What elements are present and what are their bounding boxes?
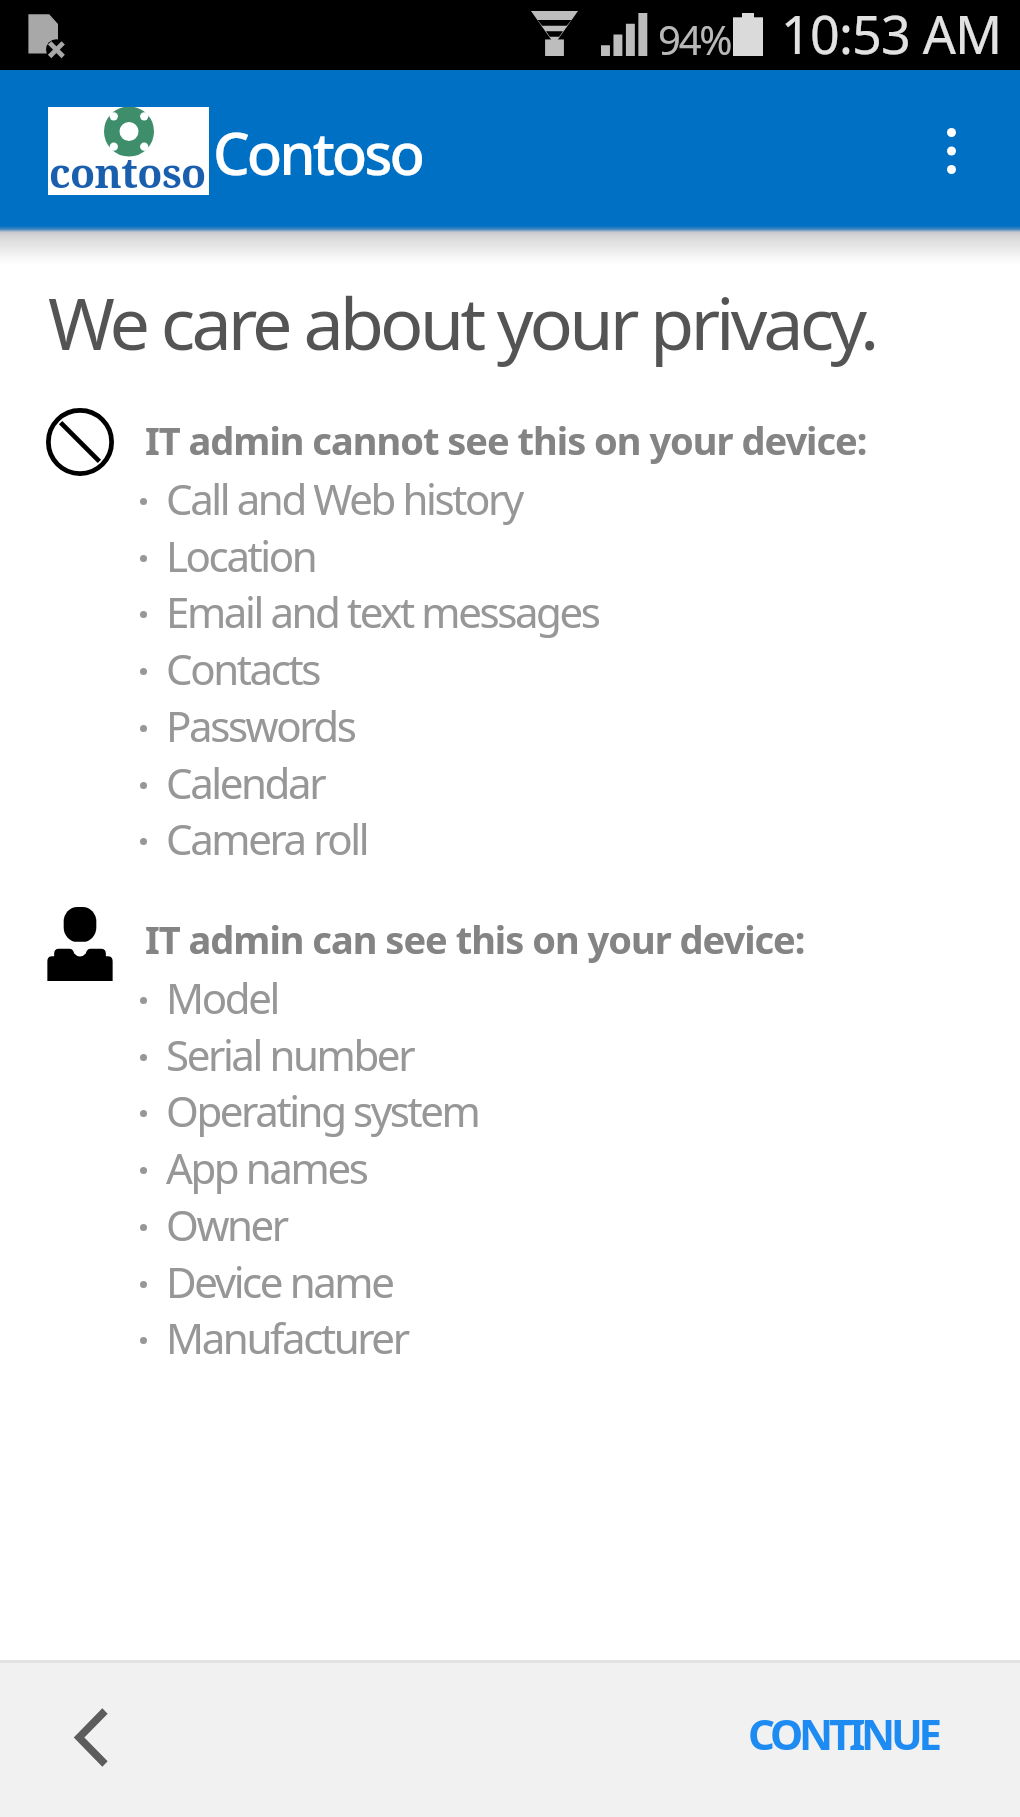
- staticText: Contacts: [166, 640, 319, 697]
- button[interactable]: Back: [35, 1682, 145, 1792]
- staticText: Model: [166, 969, 278, 1026]
- staticText: Call and Web history: [166, 470, 522, 527]
- staticText: App names: [166, 1139, 367, 1196]
- staticText: Camera roll: [166, 810, 368, 867]
- button[interactable]: More options: [903, 103, 999, 199]
- staticText: IT admin can see this on your device:: [145, 913, 805, 965]
- staticText: 94%: [658, 12, 731, 66]
- staticText: Operating system: [166, 1082, 479, 1139]
- staticText: Contoso: [213, 113, 422, 192]
- staticText: We care about your privacy.: [48, 273, 876, 371]
- staticText: IT admin cannot see this on your device:: [145, 414, 867, 466]
- staticText: Manufacturer: [166, 1309, 408, 1366]
- staticText: Passwords: [166, 697, 355, 754]
- staticText: contoso: [49, 144, 206, 195]
- staticText: Location: [166, 527, 316, 584]
- staticText: Serial number: [166, 1026, 414, 1083]
- staticText: 10:53 AM: [781, 0, 1002, 69]
- staticText: Device name: [166, 1253, 393, 1310]
- staticText: Owner: [166, 1196, 287, 1253]
- staticText: CONTINUE: [748, 1705, 938, 1762]
- button[interactable]: CONTINUE: [716, 1679, 970, 1788]
- staticText: Email and text messages: [166, 583, 599, 640]
- staticText: Calendar: [166, 754, 325, 811]
